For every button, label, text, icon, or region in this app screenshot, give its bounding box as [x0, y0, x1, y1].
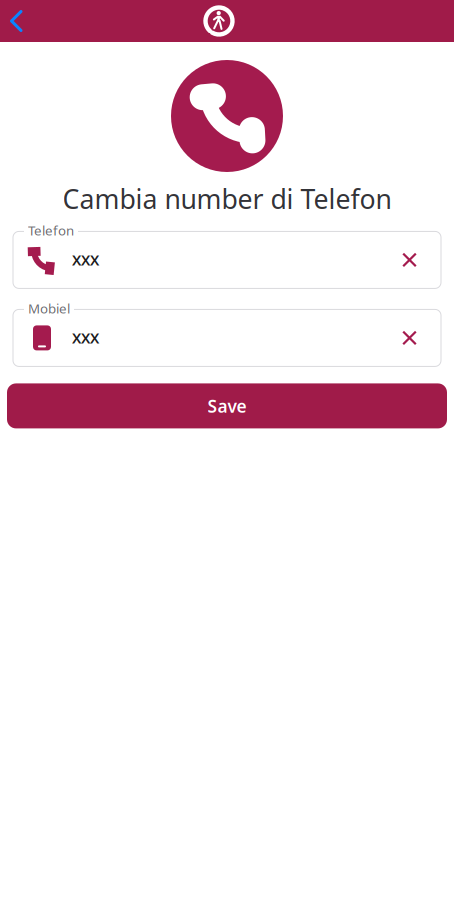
staticText: Save [207, 394, 246, 417]
button[interactable]: Clear Telefon [384, 231, 441, 288]
staticText: Telefon [28, 221, 74, 239]
staticText: Cambia number di Telefon [62, 181, 391, 216]
button[interactable]: Save [7, 383, 447, 428]
button[interactable]: Clear Mobiel [384, 309, 441, 366]
staticText: Mobiel [28, 299, 70, 317]
staticText: XXX [72, 250, 99, 270]
staticText: XXX [72, 328, 99, 348]
button[interactable]: Back [0, 0, 39, 42]
